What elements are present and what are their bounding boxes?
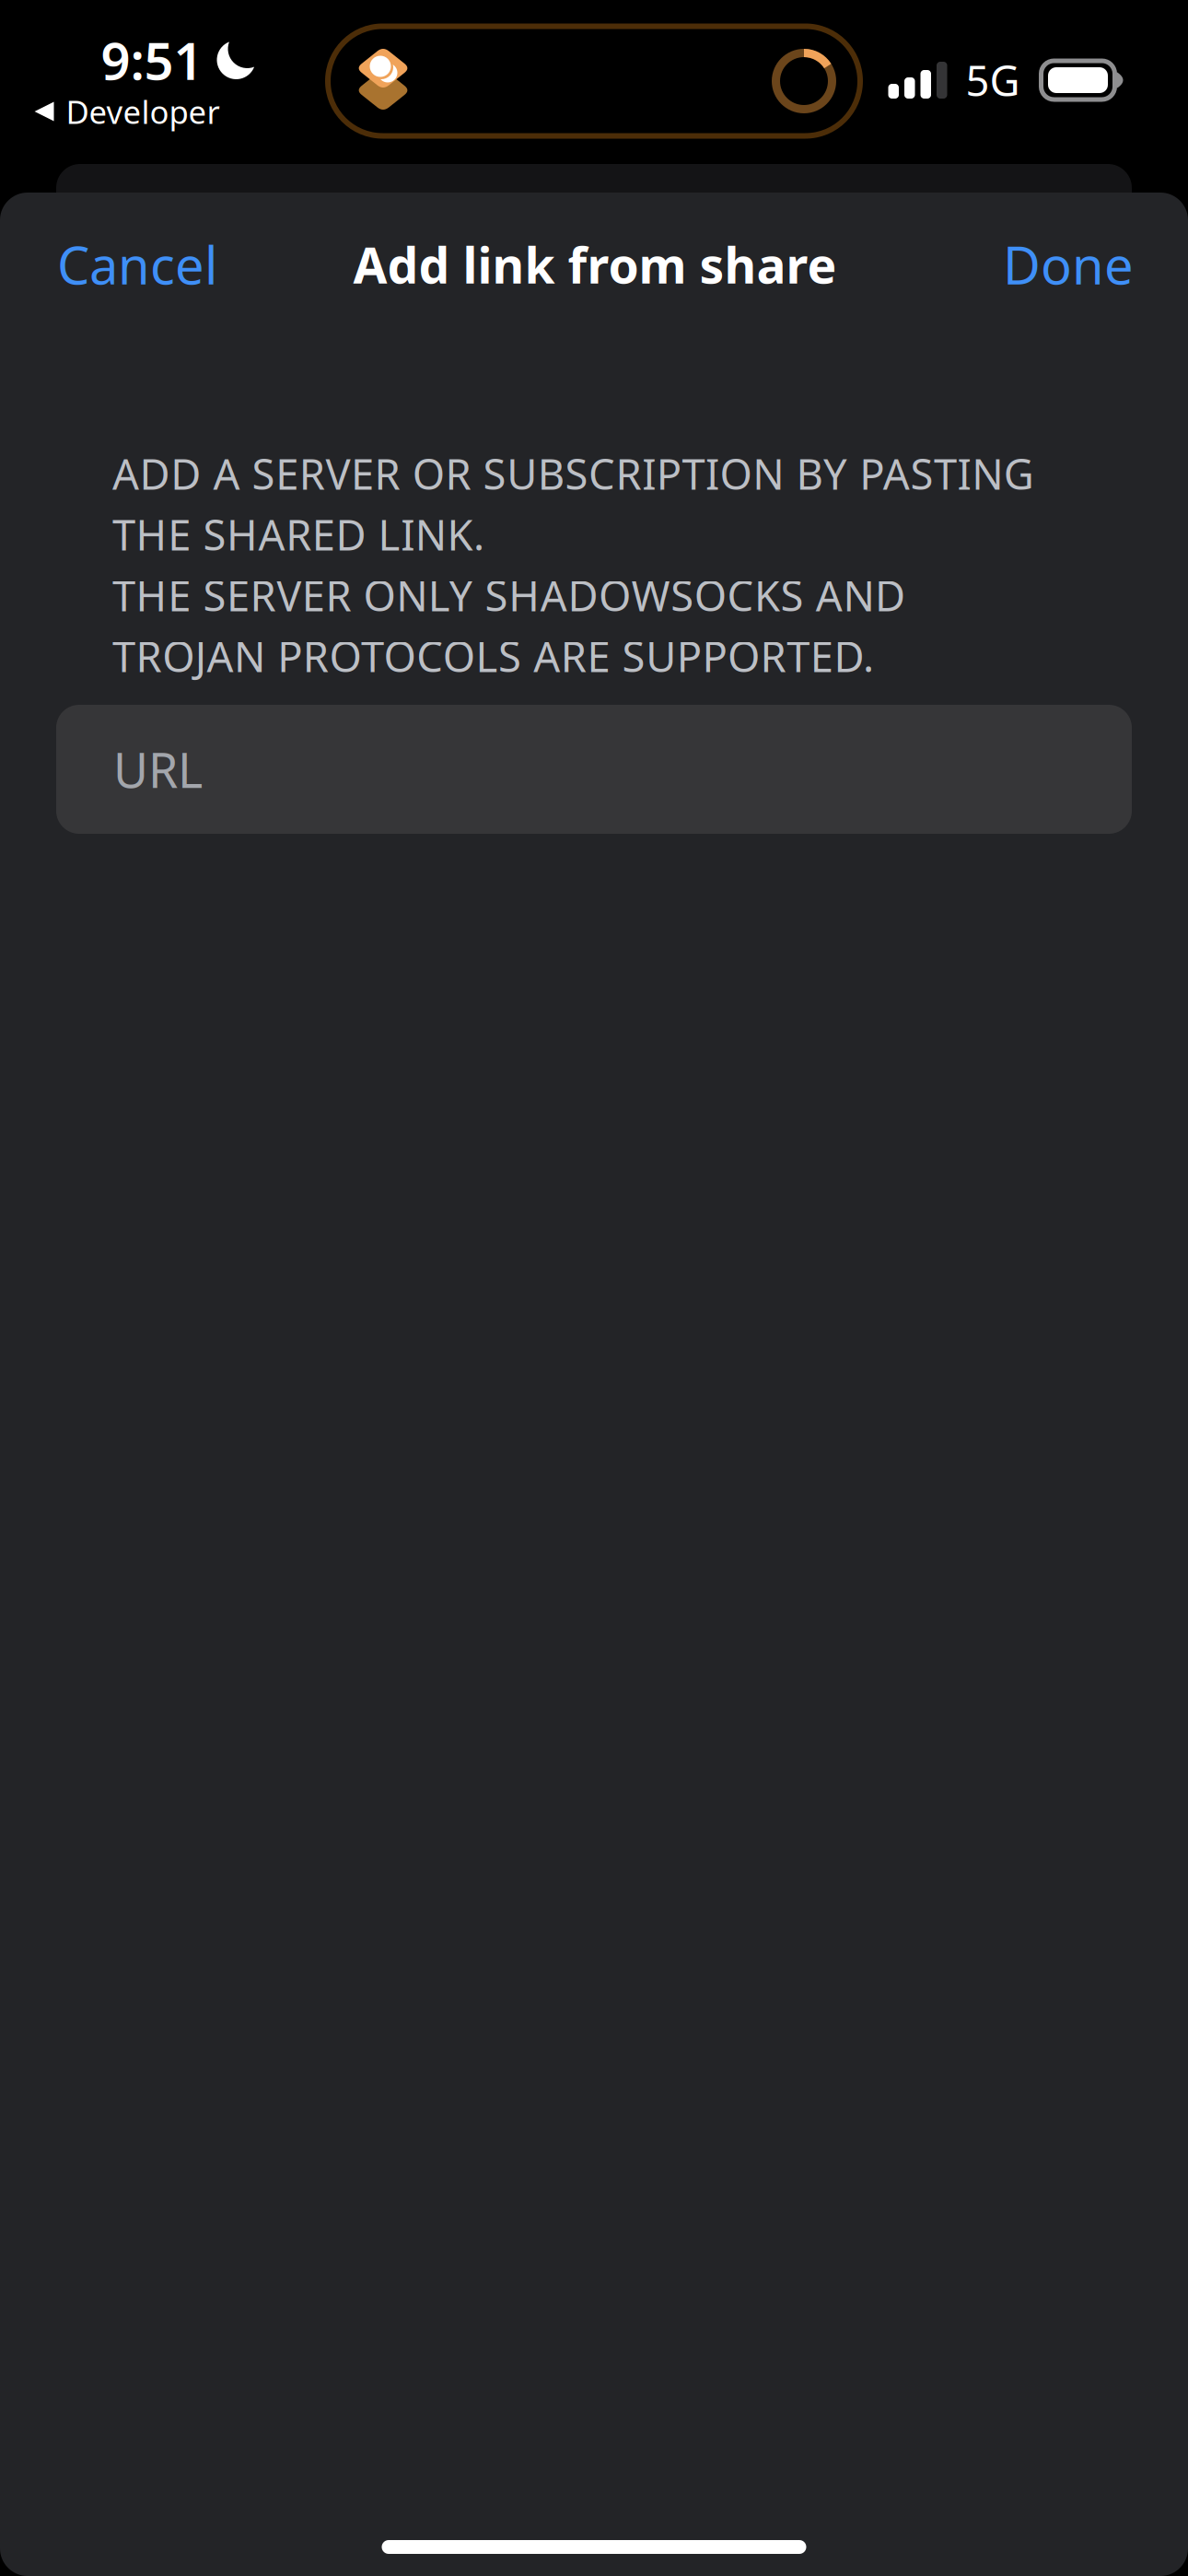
staticText: Done [1003,230,1134,299]
staticText: Cancel [57,230,217,299]
staticText: THE SERVER ONLY SHADOWSOCKS AND [112,567,905,623]
staticText: ADD A SERVER OR SUBSCRIPTION BY PASTING [112,446,1034,501]
button[interactable]: Cancel [37,203,238,326]
button[interactable]: Live Activity [328,26,860,136]
staticText: Add link from share [353,232,837,297]
staticText: TROJAN PROTOCOLS ARE SUPPORTED. [112,628,874,684]
button[interactable]: Developer [35,90,220,133]
staticText: URL [113,738,203,801]
staticText: THE SHARED LINK. [112,507,484,562]
button[interactable]: URL [56,705,1132,834]
staticText: 9:51 [101,26,203,94]
button[interactable]: Done [983,203,1154,326]
staticText: 5G [966,52,1020,108]
staticText: Developer [66,90,220,133]
